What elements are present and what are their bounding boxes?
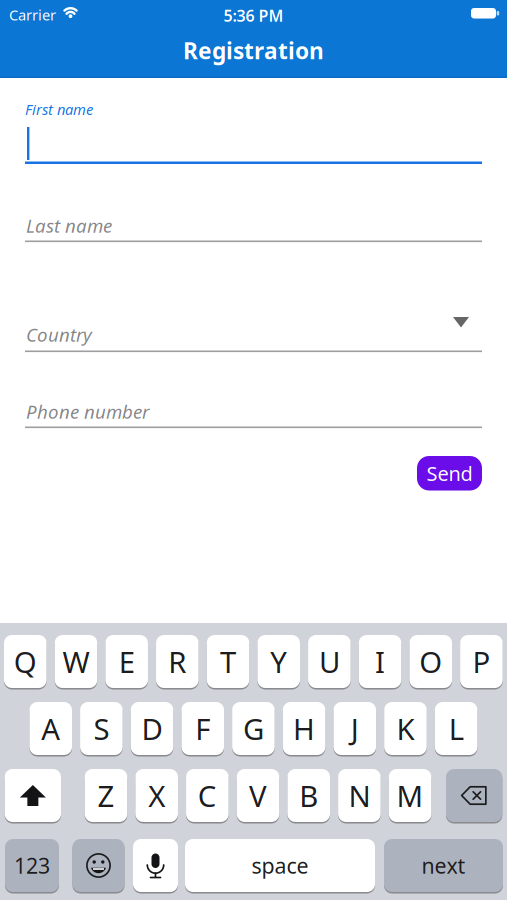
staticText: B: [299, 776, 318, 815]
button[interactable]: Send: [417, 456, 482, 490]
staticText: D: [142, 709, 163, 748]
button[interactable]: Last name: [25, 213, 482, 239]
staticText: 5:36 PM: [223, 5, 283, 26]
button[interactable]: U: [308, 635, 351, 690]
button[interactable]: A: [29, 702, 72, 757]
staticText: C: [198, 776, 217, 815]
staticText: U: [319, 642, 340, 681]
staticText: S: [93, 709, 109, 748]
staticText: H: [293, 709, 315, 748]
button[interactable]: B: [287, 769, 330, 824]
button[interactable]: S: [80, 702, 123, 757]
button[interactable]: Q: [4, 635, 47, 690]
button[interactable]: Delete: [446, 769, 502, 824]
button[interactable]: 123: [5, 839, 59, 894]
staticText: O: [419, 642, 442, 681]
staticText: L: [449, 709, 464, 748]
button[interactable]: First name: [25, 99, 482, 163]
staticText: K: [396, 709, 414, 748]
staticText: First name: [25, 99, 93, 119]
staticText: X: [148, 776, 165, 815]
button[interactable]: next: [384, 839, 503, 894]
staticText: Send: [426, 460, 472, 487]
button[interactable]: N: [338, 769, 381, 824]
staticText: G: [243, 709, 264, 748]
staticText: next: [421, 851, 465, 880]
button[interactable]: F: [181, 702, 224, 757]
button[interactable]: T: [207, 635, 249, 690]
button[interactable]: D: [131, 702, 173, 757]
button[interactable]: X: [135, 769, 178, 824]
staticText: J: [351, 709, 359, 748]
staticText: Last name: [26, 213, 112, 238]
staticText: I: [375, 642, 385, 681]
button[interactable]: L: [435, 702, 477, 757]
button[interactable]: Shift: [5, 769, 61, 824]
staticText: E: [119, 642, 135, 681]
button[interactable]: W: [55, 635, 97, 690]
button[interactable]: J: [333, 702, 376, 757]
button[interactable]: O: [409, 635, 452, 690]
button[interactable]: V: [237, 769, 279, 824]
button[interactable]: R: [156, 635, 199, 690]
button[interactable]: I: [359, 635, 401, 690]
button[interactable]: Dictation: [133, 839, 178, 894]
button[interactable]: Emoji: [72, 839, 124, 894]
button[interactable]: C: [186, 769, 229, 824]
button[interactable]: K: [384, 702, 427, 757]
staticText: Phone number: [26, 399, 149, 424]
staticText: F: [195, 709, 210, 748]
staticText: A: [41, 709, 60, 748]
button[interactable]: H: [283, 702, 325, 757]
staticText: 123: [14, 851, 50, 880]
staticText: R: [168, 642, 186, 681]
staticText: W: [62, 642, 89, 681]
button[interactable]: E: [105, 635, 148, 690]
staticText: V: [249, 776, 267, 815]
button[interactable]: G: [232, 702, 275, 757]
staticText: space: [251, 851, 308, 880]
staticText: Registration: [183, 35, 324, 66]
button[interactable]: P: [460, 635, 503, 690]
staticText: Country: [26, 322, 92, 347]
button[interactable]: M: [389, 769, 431, 824]
staticText: Q: [14, 642, 37, 681]
button[interactable]: Y: [257, 635, 300, 690]
staticText: N: [348, 776, 370, 815]
button[interactable]: Z: [85, 769, 127, 824]
staticText: M: [397, 776, 424, 815]
staticText: Z: [97, 776, 114, 815]
staticText: T: [220, 642, 236, 681]
staticText: P: [472, 642, 490, 681]
button[interactable]: space: [185, 839, 375, 894]
button[interactable]: Phone number: [25, 399, 482, 425]
button[interactable]: Country: [25, 322, 482, 348]
staticText: Carrier: [9, 5, 56, 24]
staticText: Y: [270, 642, 287, 681]
